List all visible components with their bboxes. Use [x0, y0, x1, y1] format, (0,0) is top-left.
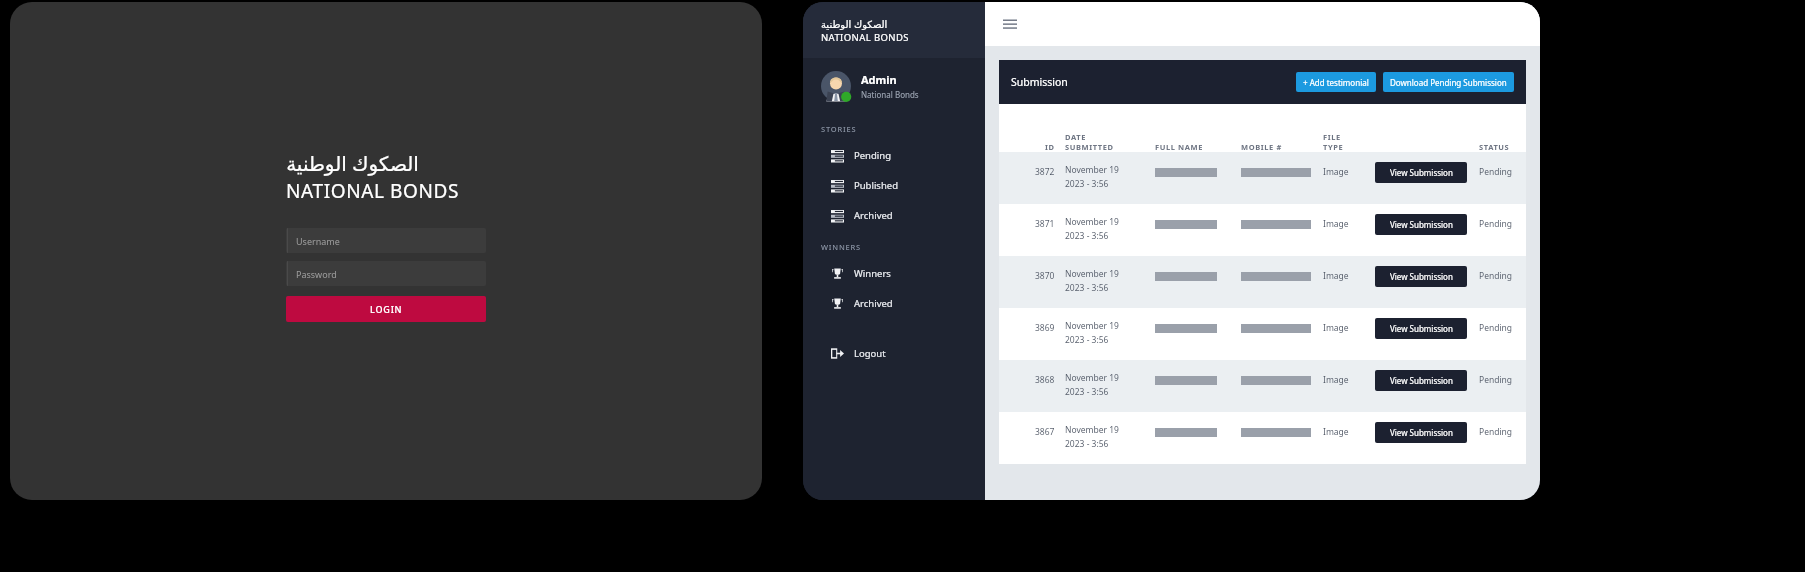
staticText: 3870	[1035, 270, 1055, 282]
button[interactable]: + Add testimonial	[1296, 72, 1376, 92]
staticText: Pending	[1479, 166, 1513, 178]
staticText: 2023 - 3:56	[1065, 386, 1109, 398]
staticText: 2023 - 3:56	[1065, 178, 1109, 190]
staticText: November 19	[1065, 424, 1119, 436]
staticText: National Bonds	[861, 89, 919, 100]
button[interactable]: 3867	[1009, 412, 1518, 464]
staticText: Winners	[854, 267, 891, 280]
staticText: Pending	[1479, 322, 1513, 334]
staticText: 3871	[1035, 218, 1055, 230]
staticText: STATUS	[1479, 142, 1510, 152]
staticText: View Submission	[1390, 219, 1453, 230]
button[interactable]: 3870	[1009, 256, 1518, 308]
staticText: FILE	[1323, 132, 1341, 142]
staticText: NATIONAL BONDS	[821, 31, 909, 44]
staticText: View Submission	[1390, 167, 1453, 178]
button[interactable]: Archived	[831, 200, 985, 230]
staticText: Image	[1323, 322, 1349, 334]
staticText: Image	[1323, 270, 1349, 282]
staticText: Image	[1323, 166, 1349, 178]
staticText: View Submission	[1390, 375, 1453, 386]
staticText: Submission	[1011, 75, 1068, 89]
staticText: Archived	[854, 209, 893, 222]
staticText: Image	[1323, 374, 1349, 386]
staticText: WINNERS	[821, 242, 861, 252]
staticText: 2023 - 3:56	[1065, 282, 1109, 294]
staticText: 3872	[1035, 166, 1055, 178]
button[interactable]: View Submission	[1375, 318, 1467, 339]
staticText: Published	[854, 179, 898, 192]
button[interactable]: Published	[831, 170, 985, 200]
staticText: Username	[296, 235, 340, 247]
button[interactable]: 3871	[1009, 204, 1518, 256]
button[interactable]: Open navigation menu	[999, 13, 1021, 35]
staticText: Download Pending Submission	[1390, 77, 1507, 88]
staticText: SUBMITTED	[1065, 142, 1114, 152]
button[interactable]: Admin	[821, 58, 985, 114]
staticText: الصكوك الوطنية	[286, 150, 419, 177]
staticText: November 19	[1065, 268, 1119, 280]
button[interactable]: 3868	[1009, 360, 1518, 412]
staticText: 2023 - 3:56	[1065, 438, 1109, 450]
staticText: Pending	[1479, 218, 1513, 230]
staticText: View Submission	[1390, 427, 1453, 438]
staticText: November 19	[1065, 372, 1119, 384]
staticText: Password	[296, 268, 337, 280]
button[interactable]: Username	[287, 228, 486, 253]
staticText: Admin	[861, 72, 897, 87]
button[interactable]: Logout	[831, 338, 985, 368]
staticText: 2023 - 3:56	[1065, 334, 1109, 346]
button[interactable]: 3869	[1009, 308, 1518, 360]
button[interactable]: View Submission	[1375, 422, 1467, 443]
button[interactable]: Password	[287, 261, 486, 286]
staticText: 3868	[1035, 374, 1055, 386]
staticText: LOGIN	[370, 303, 403, 315]
staticText: Pending	[1479, 426, 1513, 438]
staticText: FULL NAME	[1155, 142, 1204, 152]
staticText: STORIES	[821, 124, 857, 134]
staticText: Pending	[1479, 374, 1513, 386]
button[interactable]: View Submission	[1375, 162, 1467, 183]
staticText: ID	[1045, 142, 1055, 152]
staticText: Image	[1323, 218, 1349, 230]
staticText: View Submission	[1390, 271, 1453, 282]
button[interactable]: Winners	[831, 258, 985, 288]
staticText: الصكوك الوطنية	[821, 17, 888, 31]
button[interactable]: View Submission	[1375, 370, 1467, 391]
staticText: 3867	[1035, 426, 1055, 438]
staticText: NATIONAL BONDS	[286, 178, 459, 204]
staticText: Archived	[854, 297, 893, 310]
staticText: + Add testimonial	[1303, 77, 1369, 88]
staticText: November 19	[1065, 216, 1119, 228]
staticText: Pending	[854, 149, 891, 162]
button[interactable]: Download Pending Submission	[1383, 72, 1514, 92]
staticText: November 19	[1065, 320, 1119, 332]
staticText: November 19	[1065, 164, 1119, 176]
staticText: MOBILE #	[1241, 142, 1282, 152]
staticText: DATE	[1065, 132, 1086, 142]
button[interactable]: View Submission	[1375, 214, 1467, 235]
button[interactable]: 3872	[1009, 152, 1518, 204]
staticText: TYPE	[1323, 142, 1344, 152]
button[interactable]: Pending	[831, 140, 985, 170]
staticText: View Submission	[1390, 323, 1453, 334]
staticText: 3869	[1035, 322, 1055, 334]
button[interactable]: View Submission	[1375, 266, 1467, 287]
button[interactable]: Archived	[831, 288, 985, 318]
staticText: Logout	[854, 347, 886, 360]
staticText: Pending	[1479, 270, 1513, 282]
button[interactable]: LOGIN	[286, 296, 486, 322]
staticText: 2023 - 3:56	[1065, 230, 1109, 242]
staticText: Image	[1323, 426, 1349, 438]
